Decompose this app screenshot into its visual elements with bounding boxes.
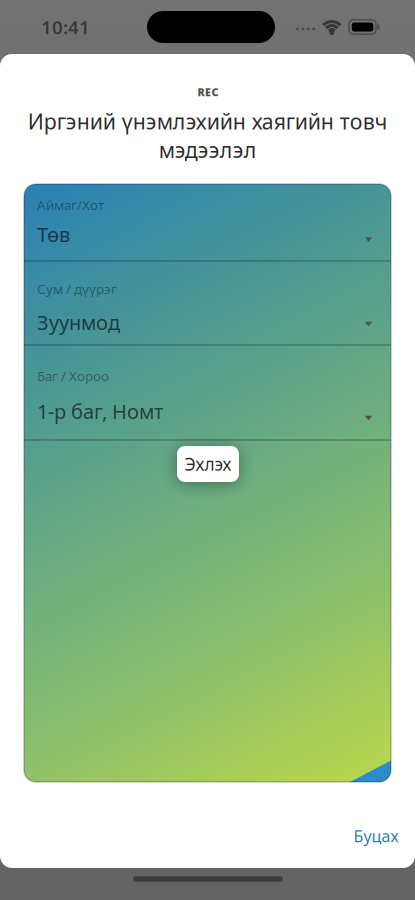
staticText: Сум / дүүрэг [37, 280, 117, 298]
button[interactable]: Буцах [353, 825, 398, 847]
staticText: Буцах [353, 825, 398, 847]
button[interactable]: Эхлэх [177, 446, 239, 482]
staticText: Зуунмод [37, 309, 120, 336]
staticText: Иргэний үнэмлэхийн хаягийн товч мэдээлэл [27, 107, 387, 164]
staticText: Эхлэх [184, 452, 231, 475]
button[interactable]: Баг / Хороо [24, 345, 391, 440]
staticText: 1-р баг, Номт [37, 398, 163, 425]
button[interactable]: Сум / дүүрэг [24, 261, 391, 345]
staticText: REC [197, 85, 218, 99]
button[interactable]: Аймаг/Хот [24, 184, 391, 261]
staticText: 10:41 [41, 15, 90, 39]
staticText: Аймаг/Хот [37, 196, 104, 214]
staticText: Төв [37, 221, 70, 248]
staticText: Баг / Хороо [37, 367, 109, 385]
